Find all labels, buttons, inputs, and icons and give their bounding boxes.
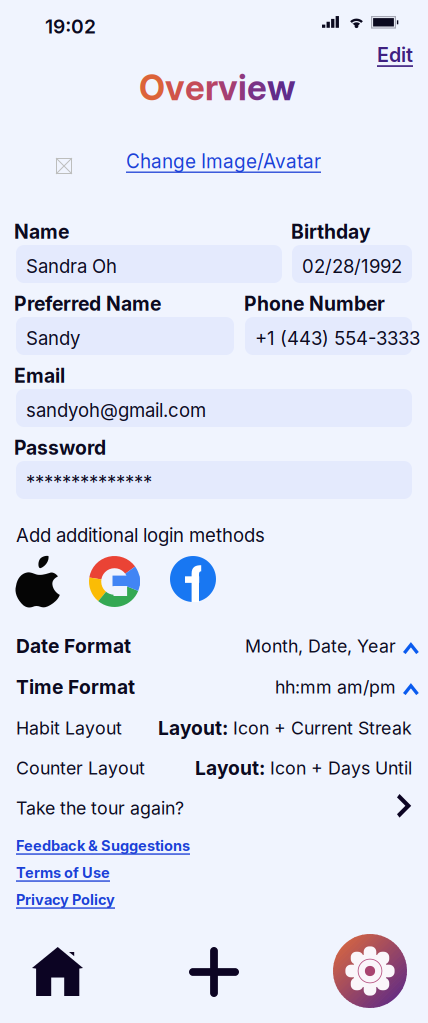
button[interactable]: Home [32,947,83,998]
button[interactable]: Sign in with Google [89,556,140,607]
staticText: Habit Layout [16,717,122,739]
staticText: +1 (443) 554-3333 [255,327,420,349]
staticText: O [139,67,165,109]
staticText: 02/28/1992 [302,255,402,277]
button[interactable]: Date Format [16,631,412,661]
button[interactable]: Terms of Use [16,864,110,882]
staticText: v [218,67,238,109]
staticText: ************** [26,471,152,493]
staticText: Preferred Name [14,292,161,315]
staticText: Birthday [291,220,371,243]
staticText: Feedback & Suggestions [16,837,190,855]
staticText: Phone Number [244,292,385,315]
staticText: Sandra Oh [26,255,117,277]
button[interactable]: Counter Layout [16,753,412,783]
staticText: Layout: [158,716,228,740]
button[interactable]: Feedback & Suggestions [16,837,190,855]
staticText: i [238,67,247,109]
button[interactable]: Add [189,947,239,997]
staticText: Take the tour again? [16,797,184,819]
staticText: Terms of Use [16,864,110,882]
image [56,158,72,174]
staticText: Change Image/Avatar [126,150,321,173]
staticText: 19:02 [45,15,96,38]
staticText: Date Format [16,634,131,658]
button[interactable]: Change Image/Avatar [126,150,321,173]
staticText: e [247,67,267,109]
staticText: sandyoh@gmail.com [26,399,206,421]
staticText: hh:mm am/pm [275,676,396,698]
staticText: Edit [377,43,413,67]
staticText: Sandy [26,327,80,349]
staticText: Add additional login methods [16,524,265,546]
staticText: e [185,67,205,109]
staticText: Time Format [16,675,135,699]
button[interactable]: Habit Layout [16,713,412,743]
staticText: Layout: [195,756,265,780]
button[interactable]: Take the tour again? [16,793,412,823]
staticText: Icon + Days Until [265,757,412,779]
staticText: r [205,67,218,109]
button[interactable]: Edit [377,43,413,67]
button[interactable]: Sign in with Facebook [170,556,216,602]
button[interactable]: Privacy Policy [16,891,115,909]
staticText: Privacy Policy [16,891,115,909]
staticText: w [267,67,296,109]
staticText: Email [14,364,65,387]
button[interactable]: Settings [333,934,407,1008]
button[interactable]: Time Format [16,672,412,702]
staticText: v [165,67,185,109]
staticText: Month, Date, Year [245,635,396,657]
staticText: Name [14,220,69,243]
staticText: Icon + Current Streak [228,717,412,739]
staticText: Counter Layout [16,757,145,779]
button[interactable]: Sign in with Apple [16,556,60,607]
staticText: Password [14,436,106,459]
